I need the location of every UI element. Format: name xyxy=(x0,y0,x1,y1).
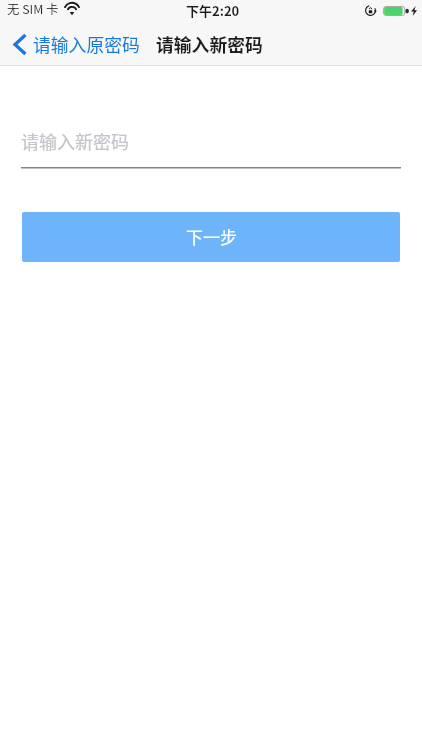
staticText: 请输入原密码 xyxy=(33,31,140,57)
other: Battery xyxy=(383,6,409,16)
staticText: 请输入新密码 xyxy=(156,31,263,57)
staticText: 无 SIM 卡 xyxy=(7,0,59,18)
staticText: 下午2:20 xyxy=(186,1,240,20)
other: Wi-Fi signal xyxy=(65,5,79,15)
button[interactable]: Back to 请输入原密码 xyxy=(0,31,148,57)
other: Charging xyxy=(411,6,417,16)
button[interactable]: 下一步 xyxy=(22,212,400,262)
staticText: 下一步 xyxy=(186,224,237,249)
button[interactable]: New password input field xyxy=(21,126,401,169)
other: Rotation lock xyxy=(365,5,377,16)
staticText: 请输入新密码 xyxy=(21,128,129,154)
